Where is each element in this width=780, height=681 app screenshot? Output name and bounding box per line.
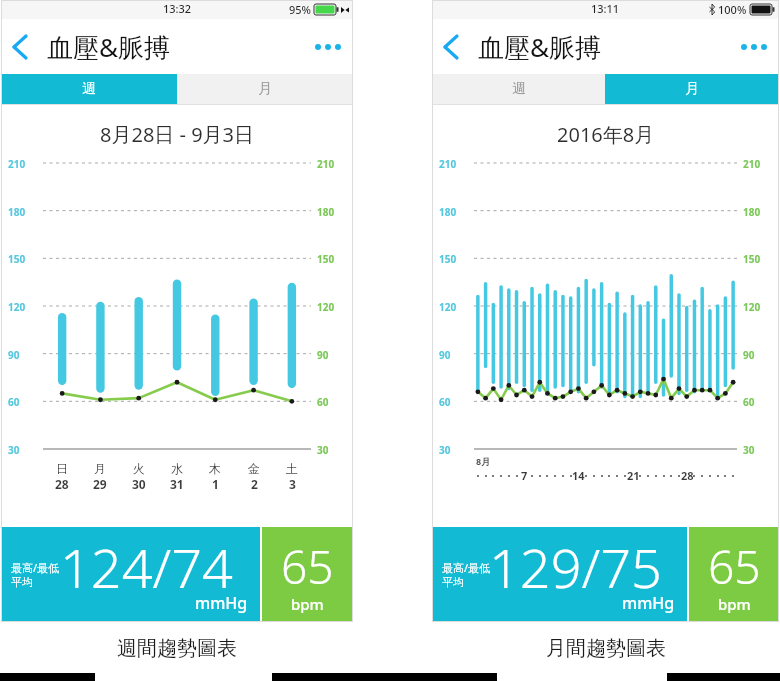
staticText: 120 [8,300,26,314]
staticText: 最高/最低 [442,560,491,575]
staticText: 180 [8,205,26,219]
staticText: 30 [317,443,329,457]
staticText: 124/74 [60,530,233,604]
staticText: 210 [317,157,335,171]
button[interactable]: 最高/最低 [1,527,260,622]
staticText: 水 [171,461,183,476]
staticText: 月 [258,80,272,98]
staticText: mmHg [622,592,675,614]
staticText: 30 [132,476,146,492]
staticText: 金 [248,461,260,476]
button[interactable]: 週 [432,74,605,104]
staticText: 29 [93,476,107,492]
staticText: 60 [317,395,329,409]
staticText: 28 [681,468,694,483]
staticText: bpm [718,594,751,614]
staticText: 日 [56,461,68,476]
staticText: 150 [317,252,335,266]
staticText: 14 [572,468,585,483]
button[interactable]: 65 [262,527,353,622]
staticText: 血壓&脈搏 [478,29,602,65]
staticText: 90 [439,348,451,362]
staticText: 120 [439,300,457,314]
staticText: mmHg [195,592,248,614]
staticText: 最高/最低 [11,560,60,575]
staticText: 平均 [11,575,33,589]
staticText: 65 [281,535,334,598]
button[interactable]: More options [315,44,341,50]
button[interactable]: 月 [177,74,353,104]
staticText: 30 [8,443,20,457]
staticText: 90 [8,348,20,362]
staticText: 21 [627,468,640,483]
staticText: 210 [743,157,761,171]
staticText: 週 [82,80,96,98]
button[interactable]: More options [741,44,767,50]
staticText: 180 [743,205,761,219]
button[interactable]: Back [432,29,468,65]
staticText: 129/75 [489,530,662,604]
staticText: 30 [743,443,755,457]
staticText: 週間趨勢圖表 [117,636,237,661]
button[interactable]: 65 [689,527,779,622]
staticText: 90 [743,348,755,362]
staticText: 65 [708,535,761,598]
staticText: 28 [55,476,69,492]
staticText: 95% [289,2,311,17]
staticText: 平均 [442,575,464,589]
staticText: 7 [521,468,528,483]
staticText: 13:11 [591,1,620,16]
staticText: 150 [439,252,457,266]
staticText: 週 [512,80,526,98]
staticText: 150 [8,252,26,266]
staticText: 1 [212,476,219,492]
staticText: 8月28日 - 9月3日 [100,121,255,148]
staticText: 月 [94,461,106,476]
staticText: 3 [289,476,296,492]
staticText: 月 [685,80,699,98]
staticText: 120 [317,300,335,314]
staticText: 火 [133,461,145,476]
staticText: 60 [8,395,20,409]
button[interactable]: Back [1,29,37,65]
staticText: 木 [209,461,221,476]
staticText: 月間趨勢圖表 [546,636,666,661]
staticText: 13:32 [163,1,192,16]
button[interactable]: 週 [1,74,177,104]
staticText: 180 [439,205,457,219]
staticText: 100% [718,2,747,17]
staticText: 60 [439,395,451,409]
staticText: 31 [170,476,184,492]
staticText: 8月 [476,455,491,467]
staticText: 210 [8,157,26,171]
staticText: 210 [439,157,457,171]
staticText: 60 [743,395,755,409]
staticText: 血壓&脈搏 [47,29,171,65]
button[interactable]: 最高/最低 [432,527,687,622]
staticText: 150 [743,252,761,266]
staticText: 2 [251,476,258,492]
staticText: 180 [317,205,335,219]
staticText: 120 [743,300,761,314]
staticText: 土 [286,461,298,476]
staticText: 30 [439,443,451,457]
button[interactable]: 月 [605,74,779,104]
staticText: bpm [291,594,324,614]
staticText: 2016年8月 [557,121,655,148]
staticText: 90 [317,348,329,362]
